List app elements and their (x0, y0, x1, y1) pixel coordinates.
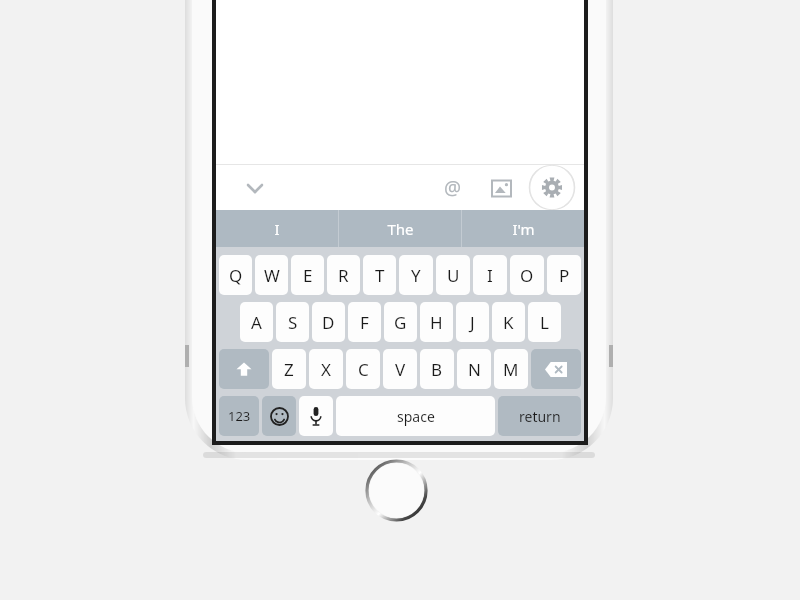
staticText: 123 (228, 407, 251, 425)
button[interactable]: A (240, 302, 273, 342)
staticText: I (274, 219, 280, 239)
button[interactable]: The (339, 210, 461, 247)
button[interactable]: B (420, 349, 454, 389)
staticText: L (540, 311, 549, 334)
staticText: U (447, 264, 460, 287)
staticText: X (321, 358, 331, 381)
button[interactable]: W (255, 255, 288, 295)
button[interactable]: Collapse (238, 171, 272, 205)
button[interactable]: Mention (436, 171, 470, 205)
staticText: M (503, 358, 519, 381)
staticText: Q (229, 264, 243, 287)
button[interactable]: E (291, 255, 324, 295)
staticText: D (322, 311, 335, 334)
staticText: Z (284, 358, 294, 381)
button[interactable]: Home (364, 458, 429, 523)
staticText: C (358, 358, 369, 381)
staticText: A (251, 311, 262, 334)
button[interactable]: S (276, 302, 309, 342)
staticText: P (559, 264, 570, 287)
staticText: G (394, 311, 407, 334)
staticText: W (264, 264, 280, 287)
staticText: Y (411, 264, 421, 287)
staticText: F (360, 311, 369, 334)
staticText: @ (444, 175, 462, 201)
staticText: return (519, 407, 561, 426)
button[interactable]: G (384, 302, 417, 342)
button[interactable]: 123 (219, 396, 259, 436)
button[interactable]: D (312, 302, 345, 342)
staticText: H (430, 311, 443, 334)
staticText: I (487, 264, 493, 287)
button[interactable]: N (457, 349, 491, 389)
button[interactable]: O (510, 255, 544, 295)
button[interactable]: I'm (462, 210, 584, 247)
button[interactable]: P (547, 255, 581, 295)
button[interactable]: U (436, 255, 470, 295)
button[interactable]: Voice input (299, 396, 333, 436)
staticText: space (397, 407, 435, 426)
button[interactable]: L (528, 302, 561, 342)
button[interactable]: H (420, 302, 453, 342)
button[interactable]: Shift (219, 349, 269, 389)
button[interactable]: C (346, 349, 380, 389)
staticText: B (431, 358, 443, 381)
button[interactable]: T (363, 255, 396, 295)
staticText: V (395, 358, 406, 381)
button[interactable]: M (494, 349, 528, 389)
staticText: S (288, 311, 298, 334)
button[interactable]: K (492, 302, 525, 342)
button[interactable]: Insert image (484, 171, 518, 205)
button[interactable]: X (309, 349, 343, 389)
staticText: T (375, 264, 385, 287)
staticText: J (470, 311, 475, 334)
button[interactable]: I (473, 255, 507, 295)
button[interactable]: V (383, 349, 417, 389)
staticText: N (468, 358, 481, 381)
staticText: E (303, 264, 313, 287)
button[interactable]: Q (219, 255, 252, 295)
button[interactable]: space (336, 396, 495, 436)
button[interactable]: R (327, 255, 360, 295)
button[interactable]: return (498, 396, 581, 436)
staticText: K (503, 311, 514, 334)
staticText: I'm (512, 219, 535, 239)
staticText: O (520, 264, 534, 287)
button[interactable]: I (216, 210, 338, 247)
button[interactable]: Emoji (262, 396, 296, 436)
button[interactable]: Backspace (531, 349, 581, 389)
staticText: R (338, 264, 349, 287)
button[interactable]: F (348, 302, 381, 342)
button[interactable]: J (456, 302, 489, 342)
staticText: The (387, 219, 414, 239)
button[interactable]: Y (399, 255, 433, 295)
button[interactable]: Settings (528, 165, 576, 210)
button[interactable]: Z (272, 349, 306, 389)
